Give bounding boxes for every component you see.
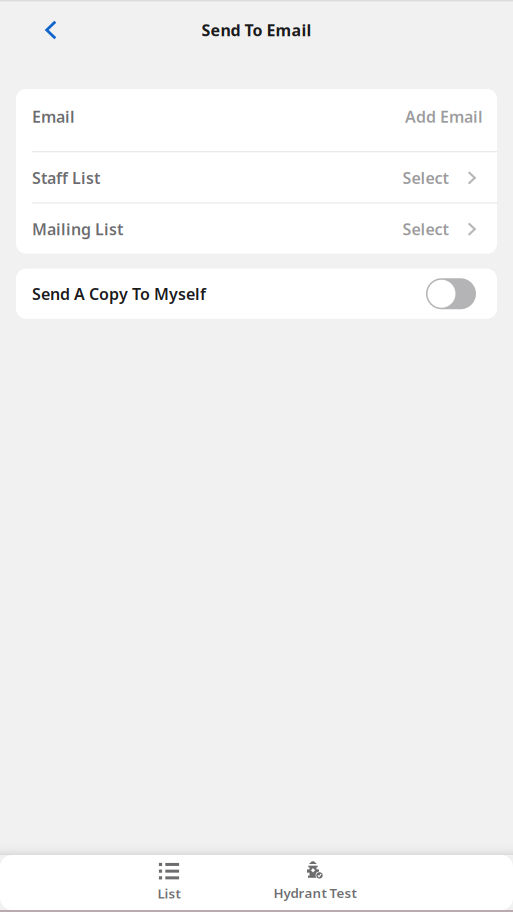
button[interactable]: Mailing List xyxy=(16,203,497,254)
staticText: Mailing List xyxy=(32,218,123,240)
staticText: Send To Email xyxy=(201,19,311,41)
staticText: Select xyxy=(402,218,448,240)
button[interactable]: Send A Copy To Myself xyxy=(16,269,497,319)
button[interactable]: List xyxy=(96,855,242,910)
staticText: Staff List xyxy=(32,167,100,188)
staticText: List xyxy=(157,884,180,902)
staticText: Hydrant Test xyxy=(273,884,356,902)
staticText: Send A Copy To Myself xyxy=(32,283,206,304)
button[interactable]: Staff List xyxy=(16,152,497,202)
button[interactable]: Email xyxy=(16,89,497,151)
button[interactable]: Hydrant Test xyxy=(242,855,388,910)
staticText: Select xyxy=(402,167,448,188)
button[interactable]: Back xyxy=(29,8,73,52)
staticText: Email xyxy=(32,106,75,127)
staticText: Add Email xyxy=(405,106,483,127)
